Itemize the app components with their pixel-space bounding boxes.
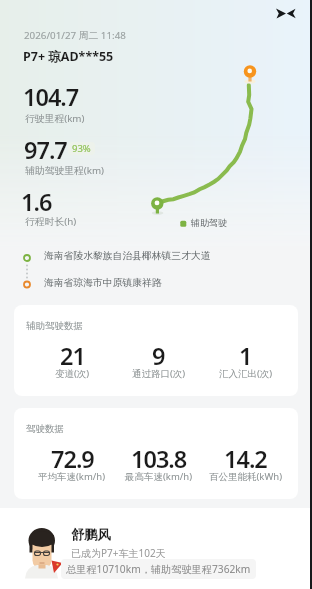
button[interactable] [270,2,302,24]
staticText: 汇入汇出(次) [219,367,273,380]
staticText: 72.9 [51,443,94,475]
staticText: 总里程10710km，辅助驾驶里程7362km [66,562,251,576]
staticText: 最高车速(km/h) [125,470,193,483]
staticText: 海南省陵水黎族自治县椰林镇三才大道 [44,250,211,262]
staticText: 1 [239,340,252,372]
button[interactable]: 驾驶数据 [14,408,298,499]
button[interactable]: 舒鹏风 [0,508,312,589]
button[interactable] [16,274,196,294]
staticText: P7+ 琼AD***55 [23,48,114,65]
staticText: 辅助驾驶里程(km) [25,164,105,177]
staticText: 舒鹏风 [71,526,111,543]
staticText: 9 [152,340,165,372]
staticText: 已成为P7+车主102天 [71,546,166,560]
staticText: 百公里能耗(kWh) [209,470,282,483]
staticText: 海南省琼海市中原镇康祥路 [44,277,162,289]
staticText: 14.2 [224,443,267,475]
staticText: 变道(次) [55,367,90,380]
button[interactable] [16,248,236,268]
staticText: 行驶里程(km) [25,112,85,125]
staticText: 1.6 [21,186,52,218]
button[interactable]: 辅助驾驶数据 [14,305,298,396]
staticText: 21 [60,340,85,372]
staticText: 2026/01/27 周二 11:48 [24,29,126,42]
staticText: 103.8 [131,443,187,475]
staticText: 104.7 [23,81,79,113]
staticText: 辅助驾驶数据 [26,320,83,332]
staticText: 驾驶数据 [26,423,64,435]
staticText: 行程时长(h) [25,215,77,228]
staticText: 通过路口(次) [132,367,186,380]
staticText: 平均车速(km/h) [38,470,106,483]
staticText: 辅助驾驶 [191,217,227,228]
staticText: 97.7 [24,134,67,166]
staticText: 93% [72,142,91,155]
